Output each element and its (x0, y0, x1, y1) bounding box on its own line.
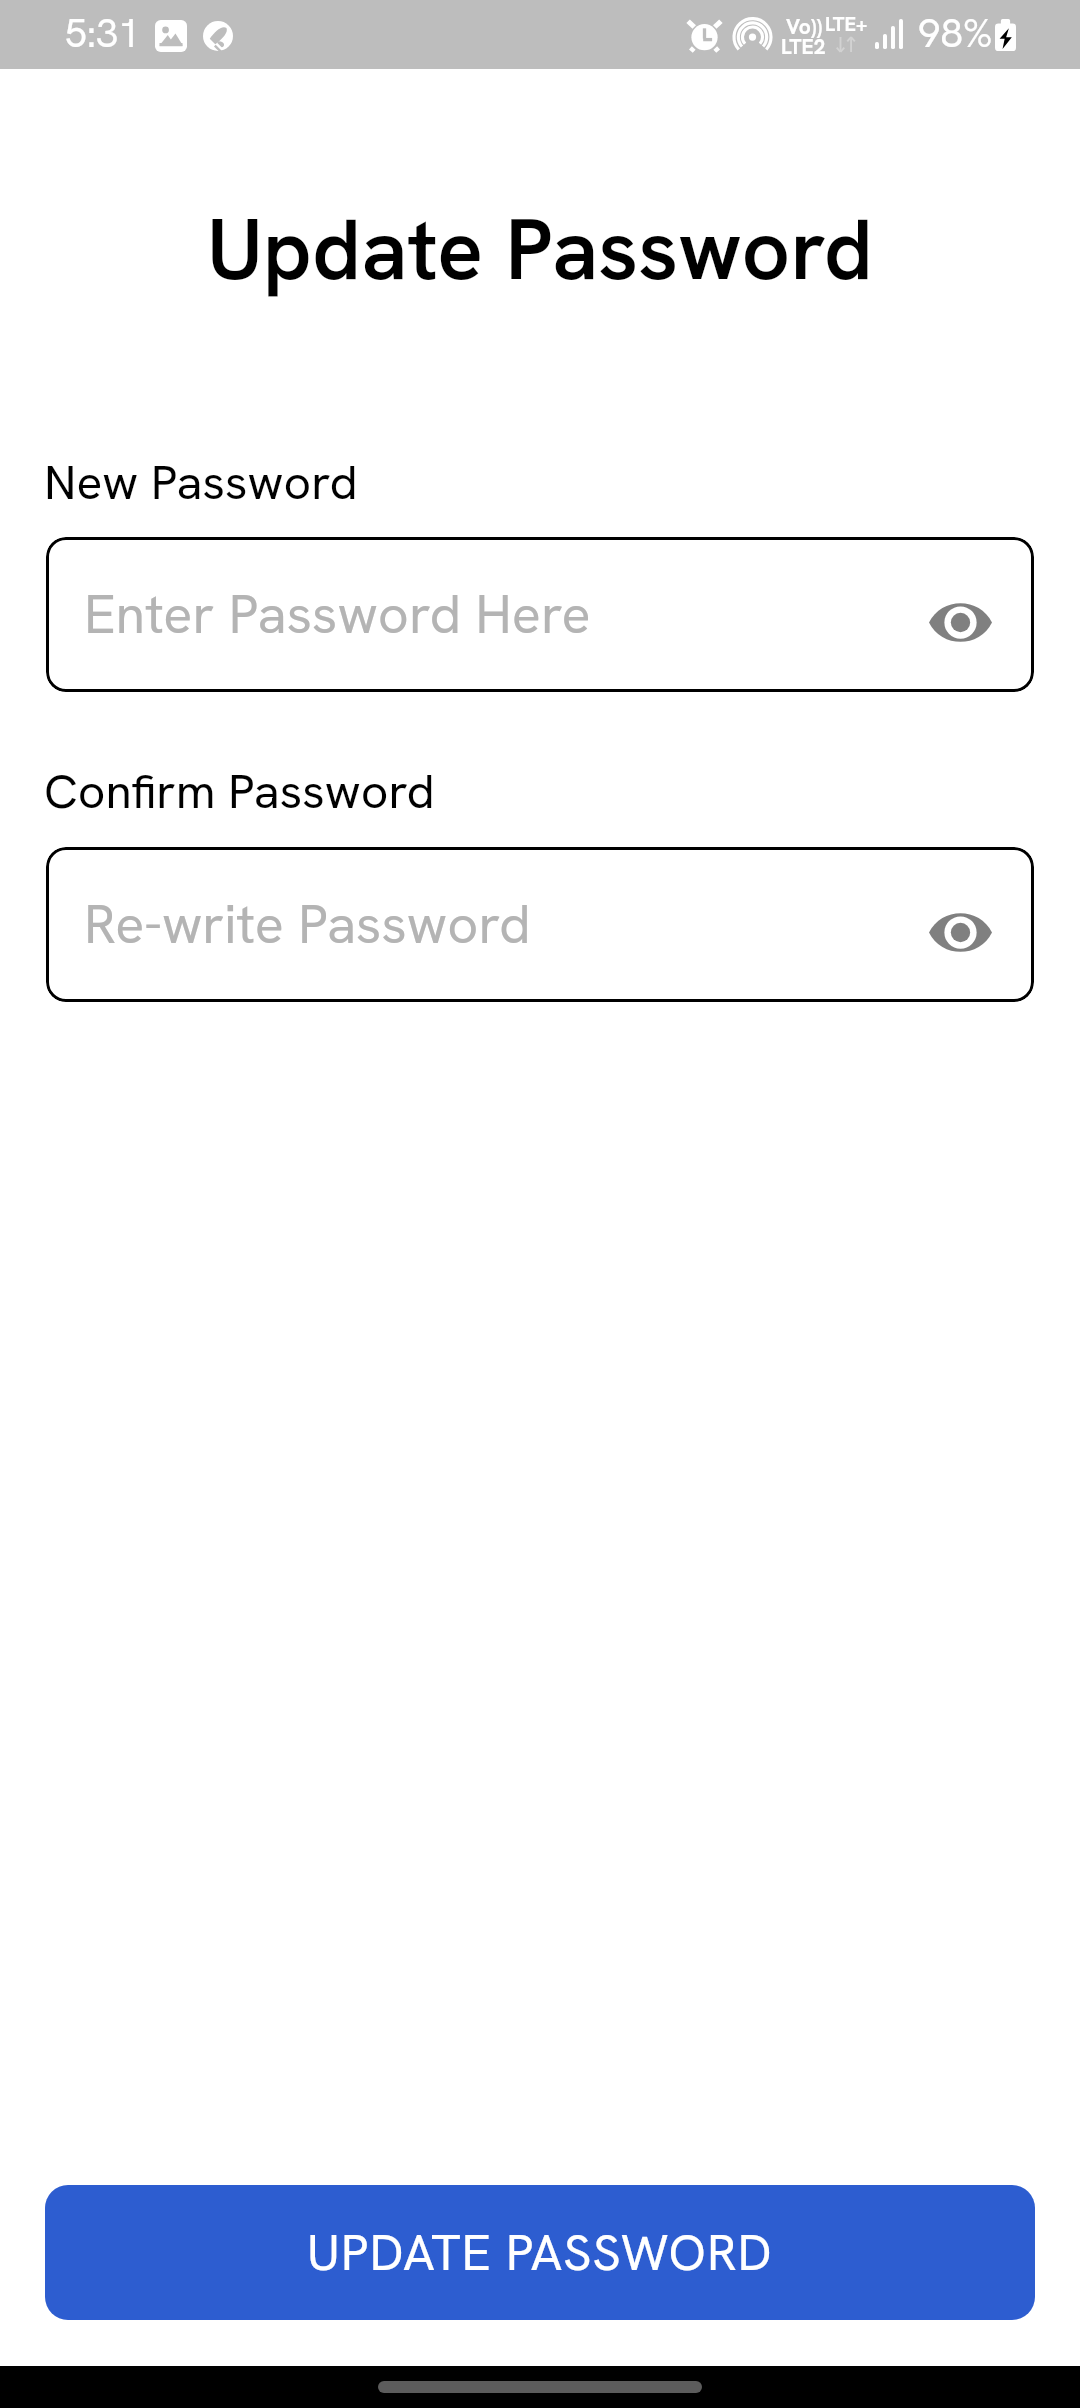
staticText: UPDATE PASSWORD (307, 2220, 773, 2285)
button[interactable]: Show confirm password (924, 896, 996, 968)
staticText: 98% (918, 7, 993, 59)
staticText: Re-write Password (84, 889, 531, 959)
staticText: Enter Password Here (84, 579, 591, 649)
staticText: LTE+ (825, 11, 868, 37)
button[interactable]: Show new password (924, 586, 996, 658)
button[interactable]: Re-write Password (46, 847, 1034, 1002)
staticText: 5:31 (65, 8, 140, 59)
staticText: New Password (44, 451, 358, 514)
staticText: Confirm Password (44, 760, 435, 823)
staticText: LTE2 (781, 33, 826, 60)
staticText: Update Password (0, 194, 1080, 305)
button[interactable]: UPDATE PASSWORD (45, 2185, 1035, 2320)
button[interactable]: Enter Password Here (46, 537, 1034, 692)
staticText: Vo)) (786, 13, 823, 40)
